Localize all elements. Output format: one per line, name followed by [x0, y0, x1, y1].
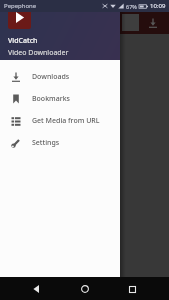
- button[interactable]: Recent apps: [122, 279, 142, 299]
- staticText: 10:09: [150, 2, 166, 10]
- staticText: Downloads: [32, 72, 70, 82]
- button[interactable]: Home: [75, 279, 95, 299]
- button[interactable]: Download: [145, 15, 161, 31]
- staticText: Bookmarks: [32, 94, 70, 104]
- staticText: 67%: [126, 3, 137, 10]
- staticText: Get Media from URL: [32, 116, 100, 126]
- staticText: Pepephone: [4, 2, 37, 10]
- staticText: Video Downloader: [8, 48, 69, 58]
- button[interactable]: Settings: [0, 132, 120, 154]
- staticText: VidCatch: [8, 36, 38, 46]
- button[interactable]: Downloads: [0, 66, 120, 88]
- button[interactable]: Bookmarks: [0, 88, 120, 110]
- button[interactable]: Get Media from URL: [0, 110, 120, 132]
- staticText: Settings: [32, 138, 60, 148]
- button[interactable]: VidCatch: [0, 0, 120, 60]
- button[interactable]: Back: [27, 279, 47, 299]
